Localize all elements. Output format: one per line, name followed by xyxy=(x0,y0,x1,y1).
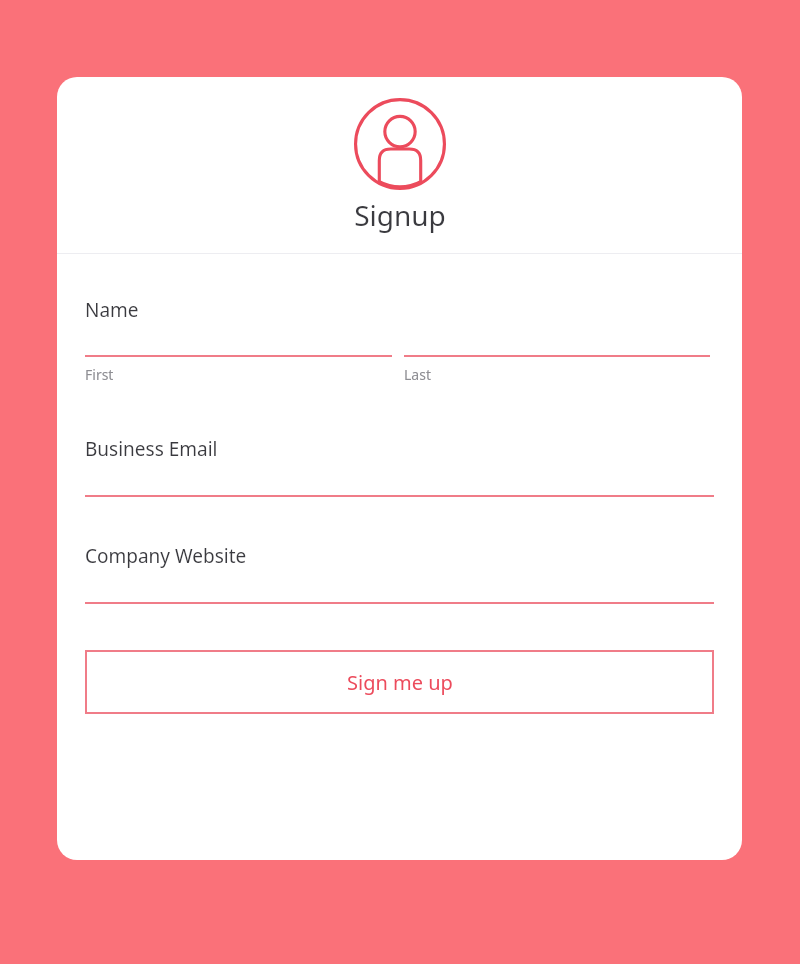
staticText: Sign me up xyxy=(347,669,453,696)
button[interactable]: First xyxy=(85,355,392,384)
staticText: Signup xyxy=(354,196,446,234)
staticText: Company Website xyxy=(85,543,247,569)
button[interactable]: Last xyxy=(404,355,710,384)
staticText: First xyxy=(85,365,114,384)
staticText: Business Email xyxy=(85,436,218,462)
staticText: Last xyxy=(404,365,431,384)
button[interactable]: Sign me up xyxy=(85,650,714,714)
staticText: Name xyxy=(85,297,139,323)
